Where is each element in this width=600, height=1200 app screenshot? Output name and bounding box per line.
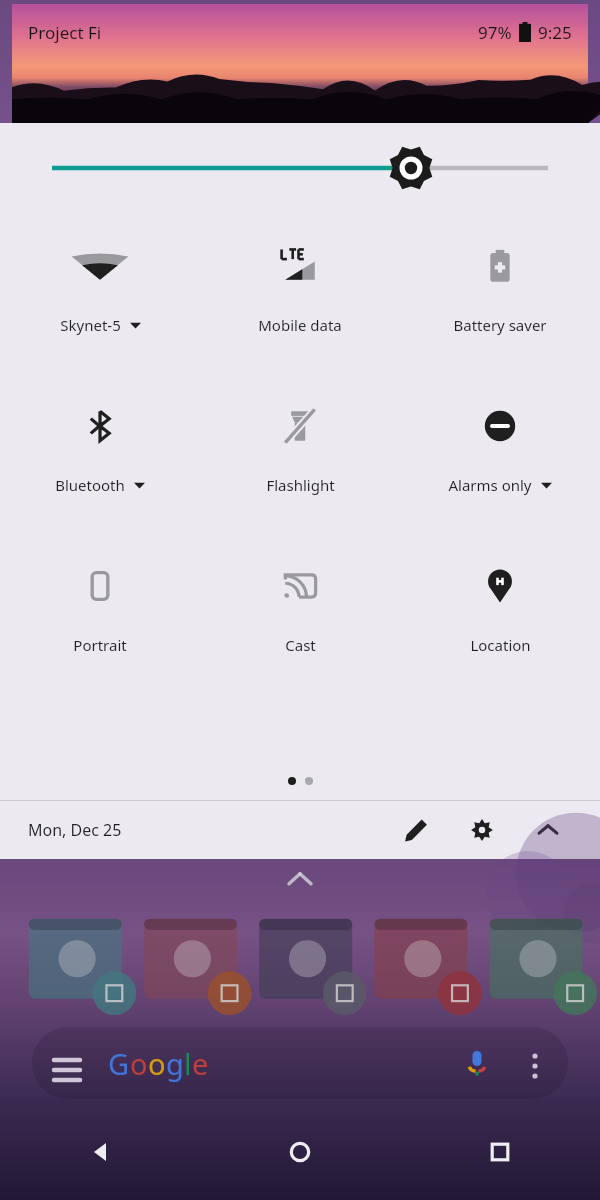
staticText: e	[192, 1044, 209, 1083]
staticText: Location	[470, 635, 531, 655]
button[interactable]: Flashlight	[200, 381, 400, 515]
staticText: G	[108, 1044, 130, 1083]
staticText: Mon, Dec 25	[28, 819, 122, 841]
button[interactable]: Mobile data	[200, 221, 400, 355]
staticText: Mobile data	[258, 315, 342, 335]
staticText: 9:25	[538, 21, 572, 44]
staticText: Alarms only	[448, 475, 532, 495]
staticText: Bluetooth	[55, 475, 125, 495]
button[interactable]: Recents	[400, 1104, 600, 1200]
button[interactable]: Edit	[394, 808, 438, 852]
button[interactable]: More options	[522, 1050, 548, 1076]
button[interactable]: Home	[200, 1104, 400, 1200]
staticText: l	[184, 1044, 192, 1083]
button[interactable]: Menu	[52, 1048, 82, 1078]
button[interactable]: Collapse	[526, 808, 570, 852]
staticText: 97%	[478, 21, 512, 44]
button[interactable]: Settings	[460, 808, 504, 852]
staticText: o	[130, 1044, 148, 1083]
button[interactable]: Alarms only	[400, 381, 600, 515]
button[interactable]: Back	[0, 1104, 200, 1200]
button[interactable]: Cast	[200, 541, 400, 675]
button[interactable]: Voice search	[462, 1048, 492, 1078]
staticText: Skynet-5	[60, 315, 121, 335]
staticText: g	[166, 1044, 184, 1083]
button[interactable]: Battery saver	[400, 221, 600, 355]
button[interactable]: Portrait	[0, 541, 200, 675]
button[interactable]: Brightness	[0, 123, 600, 201]
staticText: Portrait	[73, 635, 127, 655]
button[interactable]: Location	[400, 541, 600, 675]
staticText: o	[148, 1044, 166, 1083]
staticText: Battery saver	[453, 315, 547, 335]
staticText: Cast	[285, 635, 316, 655]
staticText: Project Fi	[28, 21, 102, 44]
button[interactable]: Skynet-5	[0, 221, 200, 355]
staticText: Flashlight	[266, 475, 335, 495]
button[interactable]: Bluetooth	[0, 381, 200, 515]
button[interactable]: Menu	[32, 1027, 568, 1099]
